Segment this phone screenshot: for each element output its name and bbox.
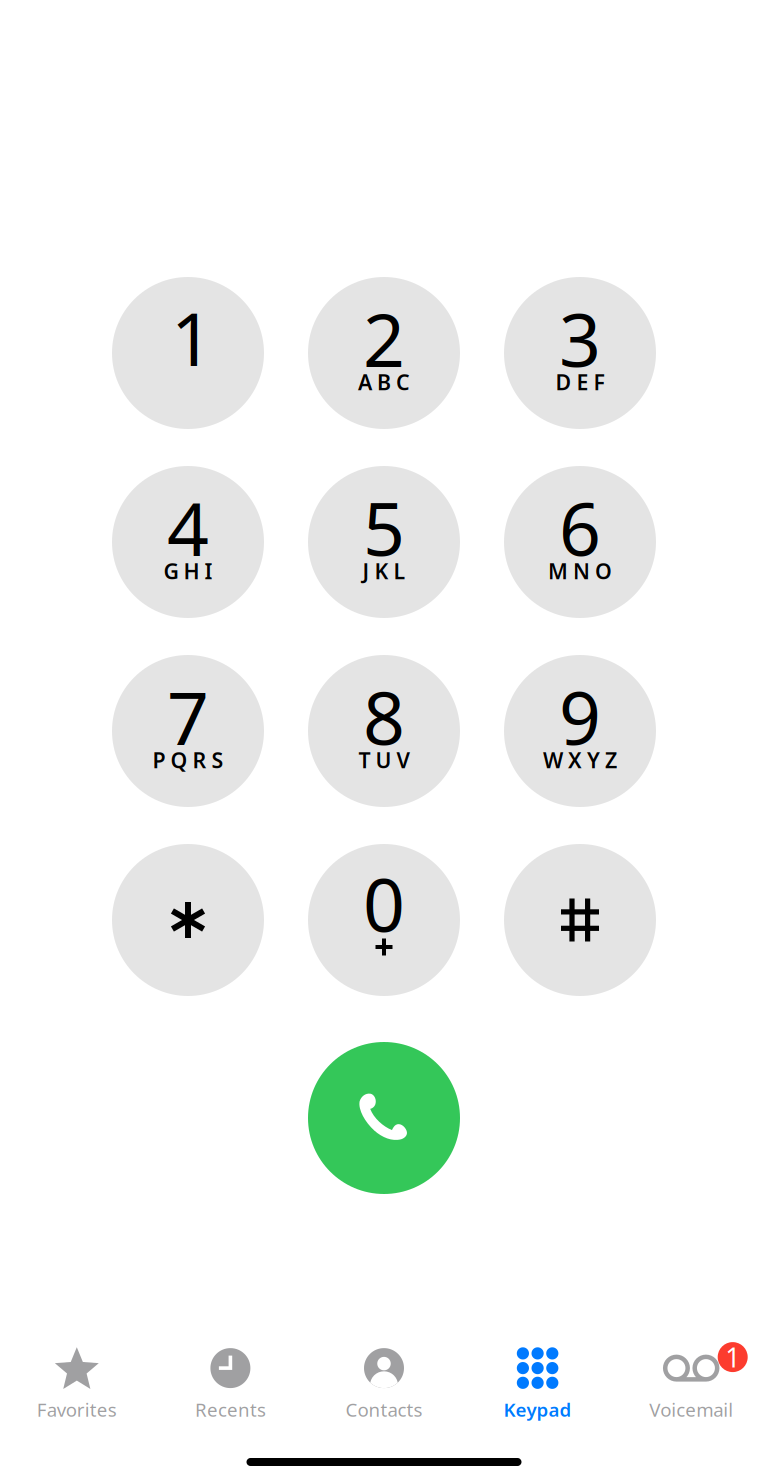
staticText: V: [396, 746, 409, 774]
staticText: T: [358, 746, 370, 774]
staticText: 6: [559, 479, 601, 576]
button[interactable]: 2: [308, 277, 460, 429]
staticText: N: [573, 557, 590, 585]
staticText: S: [211, 746, 223, 774]
staticText: G: [163, 557, 178, 585]
button[interactable]: Call: [308, 1042, 460, 1194]
staticText: D: [555, 368, 571, 396]
staticText: X: [568, 746, 582, 774]
staticText: Voicemail: [649, 1397, 733, 1422]
staticText: E: [576, 368, 588, 396]
button[interactable]: Contacts: [307, 1352, 461, 1422]
button[interactable]: 6: [504, 466, 656, 618]
staticText: 1: [171, 289, 213, 386]
button[interactable]: 0: [308, 844, 460, 996]
staticText: U: [375, 746, 391, 774]
staticText: C: [396, 368, 410, 396]
staticText: Z: [605, 746, 617, 774]
button[interactable]: Keypad: [461, 1352, 614, 1422]
staticText: Q: [170, 746, 187, 774]
button[interactable]: 8: [308, 655, 460, 807]
button[interactable]: 5: [308, 466, 460, 618]
staticText: F: [593, 368, 604, 396]
staticText: 9: [559, 668, 601, 765]
button[interactable]: 1: [614, 1352, 768, 1422]
staticText: 0: [363, 855, 405, 952]
staticText: H: [183, 557, 199, 585]
staticText: Recents: [195, 1397, 266, 1422]
staticText: J: [362, 557, 369, 585]
staticText: O: [595, 557, 612, 585]
staticText: Contacts: [345, 1397, 422, 1422]
button[interactable]: 7: [112, 655, 264, 807]
staticText: Keypad: [504, 1397, 572, 1422]
staticText: 4: [167, 479, 209, 576]
staticText: 1: [725, 1339, 740, 1375]
staticText: Y: [587, 746, 600, 774]
staticText: W: [543, 746, 563, 774]
staticText: 5: [363, 479, 405, 576]
button[interactable]: 4: [112, 466, 264, 618]
staticText: 7: [167, 668, 209, 765]
button[interactable]: Recents: [154, 1352, 307, 1422]
staticText: L: [393, 557, 405, 585]
button[interactable]: Pound: [504, 844, 656, 996]
button[interactable]: 9: [504, 655, 656, 807]
staticText: Favorites: [37, 1397, 117, 1422]
staticText: B: [377, 368, 391, 396]
staticText: 3: [559, 290, 601, 387]
button[interactable]: Star: [112, 844, 264, 996]
staticText: P: [152, 746, 165, 774]
button[interactable]: Favorites: [0, 1352, 154, 1422]
button[interactable]: 1: [112, 277, 264, 429]
staticText: I: [204, 557, 212, 585]
button[interactable]: 3: [504, 277, 656, 429]
staticText: 8: [363, 668, 405, 765]
staticText: R: [192, 746, 206, 774]
staticText: K: [374, 557, 388, 585]
staticText: M: [548, 557, 568, 585]
staticText: 2: [363, 290, 405, 387]
staticText: A: [358, 368, 372, 396]
